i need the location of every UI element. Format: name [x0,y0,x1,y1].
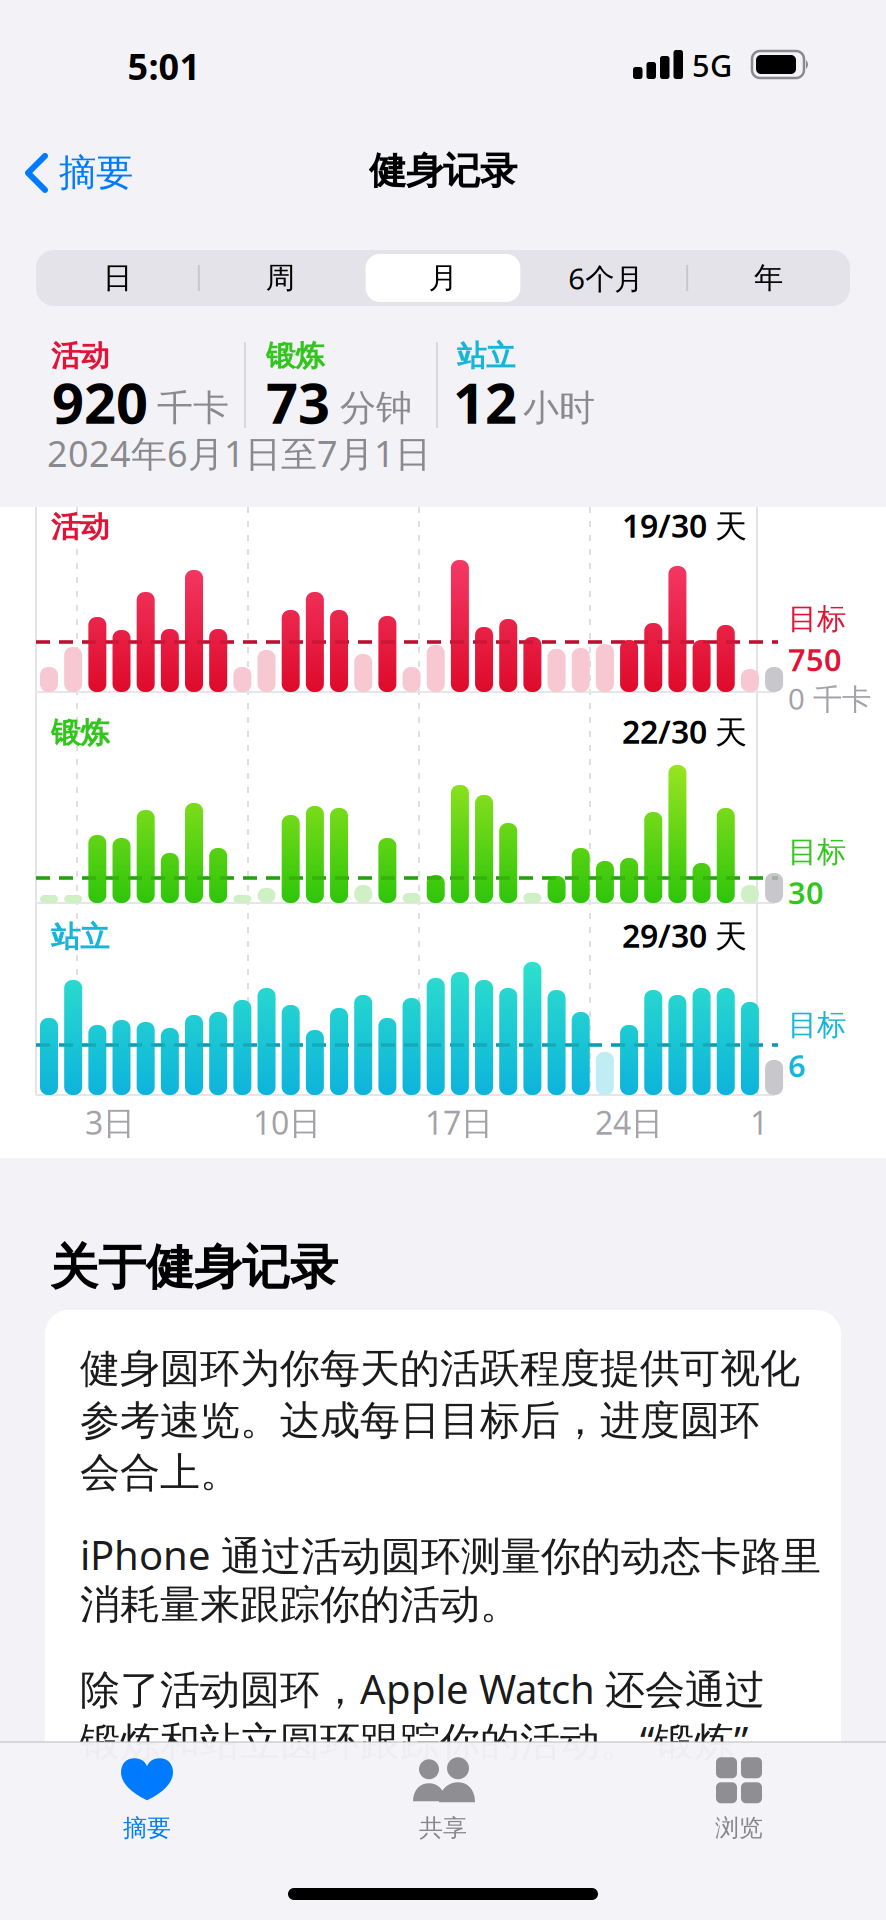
staticText: 活动 [51,338,109,374]
staticText: 参考速览。达成每日目标后，进度圆环 [80,1396,760,1445]
staticText: 6 [788,1045,806,1086]
staticText: 目标 [788,1007,846,1043]
staticText: 3日 [85,1101,135,1143]
staticText: 12 [453,365,517,439]
staticText: 消耗量来跟踪你的活动。 [80,1580,520,1629]
staticText: 750 [788,639,842,680]
staticText: 73 [266,365,330,439]
staticText: 分钟 [340,386,412,430]
button[interactable]: 共享 [343,1747,543,1851]
staticText: 6个月 [568,258,643,297]
staticText: 锻炼 [266,338,324,374]
staticText: 1 [750,1101,768,1143]
staticText: 锻炼 [51,715,109,751]
staticText: 共享 [419,1813,467,1843]
staticText: 千卡 [157,386,229,430]
staticText: 站立 [51,919,109,955]
staticText: 周 [266,260,295,296]
staticText: 30 [788,872,824,913]
staticText: 健身圆环为你每天的活跃程度提供可视化 [80,1344,800,1393]
button[interactable]: 浏览 [639,1747,839,1851]
staticText: 920 [52,365,148,439]
staticText: 会合上。 [80,1448,240,1497]
staticText: 浏览 [715,1813,763,1843]
staticText: 站立 [457,338,515,374]
staticText: 摘要 [59,150,133,196]
staticText: 小时 [523,386,595,430]
staticText: 2024年6月1日至7月1日 [47,429,431,477]
staticText: 年 [754,260,783,296]
button[interactable]: 日 [36,250,199,306]
staticText: 24日 [595,1101,663,1143]
staticText: 目标 [788,601,846,637]
staticText: 5G [692,45,732,85]
button[interactable]: 摘要 [47,1747,247,1851]
staticText: 目标 [788,834,846,870]
staticText: 月 [428,260,457,296]
button[interactable]: 6个月 [524,250,687,306]
staticText: 5:01 [127,42,200,90]
staticText: 17日 [425,1101,493,1143]
staticText: iPhone 通过活动圆环测量你的动态卡路里 [80,1528,821,1581]
staticText: 29/30 天 [622,914,747,956]
button[interactable]: 月 [362,250,524,306]
button[interactable]: 年 [687,250,850,306]
staticText: 健身记录 [369,148,517,194]
staticText: 关于健身记录 [50,1238,338,1297]
staticText: 0 千卡 [788,679,871,718]
staticText: 除了活动圆环，Apple Watch 还会通过 [80,1662,765,1715]
staticText: 活动 [51,509,109,545]
staticText: 摘要 [123,1813,171,1843]
staticText: 22/30 天 [622,710,747,752]
staticText: 19/30 天 [622,504,747,546]
button[interactable]: 返回摘要 [24,150,133,196]
button[interactable]: 周 [199,250,362,306]
staticText: 锻炼和站立圆环跟踪你的活动。“锻炼” [80,1714,748,1767]
staticText: 日 [103,260,132,296]
staticText: 10日 [253,1101,321,1143]
